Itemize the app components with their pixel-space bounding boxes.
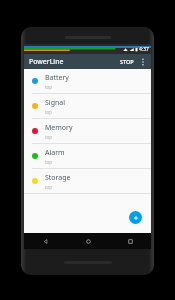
button[interactable]: Back: [24, 233, 67, 249]
staticText: Battery: [45, 73, 69, 83]
staticText: 4:37: [139, 46, 149, 53]
button[interactable]: STOP: [118, 56, 136, 67]
staticText: top: [45, 134, 53, 140]
staticText: Alarm: [45, 148, 65, 158]
staticText: top: [45, 84, 53, 90]
button[interactable]: Add: [129, 211, 142, 224]
button[interactable]: Signal: [24, 94, 151, 118]
button[interactable]: Battery: [24, 69, 151, 93]
staticText: Memory: [45, 123, 73, 133]
button[interactable]: More options: [139, 55, 146, 68]
button[interactable]: Recent apps: [109, 233, 151, 249]
staticText: top: [45, 109, 53, 115]
button[interactable]: Alarm: [24, 144, 151, 168]
staticText: STOP: [120, 58, 134, 65]
staticText: Storage: [45, 173, 71, 183]
button[interactable]: Storage: [24, 169, 151, 193]
staticText: Signal: [45, 98, 66, 108]
button[interactable]: Home: [67, 233, 109, 249]
staticText: PowerLine: [29, 57, 118, 67]
button[interactable]: Memory: [24, 119, 151, 143]
staticText: top: [45, 184, 53, 190]
staticText: top: [45, 159, 53, 165]
